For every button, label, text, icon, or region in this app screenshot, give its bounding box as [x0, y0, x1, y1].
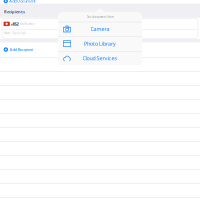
- staticText: Camera: [90, 25, 109, 33]
- button[interactable]: Cloud Services: [58, 51, 142, 65]
- button[interactable]: Add Document: [0, 0, 200, 4]
- staticText: +852: [10, 21, 18, 26]
- staticText: Add Document: [9, 0, 35, 4]
- staticText: Name (Optional): [4, 31, 26, 35]
- button[interactable]: Camera: [58, 22, 142, 36]
- staticText: Fax Number: [20, 22, 35, 26]
- staticText: Add Recipient: [10, 47, 33, 52]
- staticText: Recipients: [4, 9, 25, 14]
- button[interactable]: Add Recipient: [0, 45, 200, 54]
- button[interactable]: Photo Library: [58, 37, 142, 50]
- staticText: Cloud Services: [82, 55, 117, 62]
- staticText: Get document from: [86, 15, 113, 19]
- staticText: Photo Library: [84, 40, 116, 47]
